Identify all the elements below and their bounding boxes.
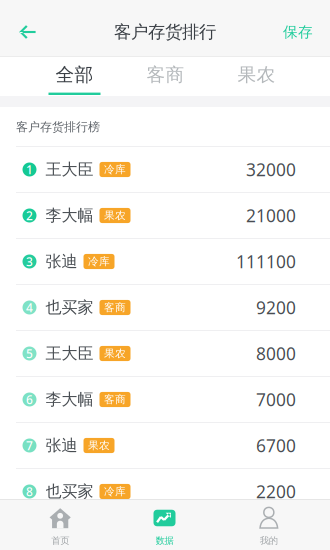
- staticText: 冷库: [104, 485, 126, 498]
- staticText: 我的: [260, 535, 278, 546]
- staticText: 2: [26, 207, 33, 223]
- staticText: 4: [26, 299, 33, 315]
- staticText: 客商: [104, 301, 126, 314]
- staticText: 客户存货排行: [114, 21, 216, 43]
- staticText: 首页: [51, 535, 69, 546]
- button[interactable]: 3: [0, 239, 330, 285]
- staticText: 果农: [88, 439, 110, 452]
- staticText: 8: [26, 483, 33, 499]
- button[interactable]: 1: [0, 147, 330, 193]
- button[interactable]: 保存: [268, 8, 330, 56]
- staticText: 3: [26, 253, 33, 269]
- staticText: 数据: [155, 535, 173, 546]
- staticText: 全部: [55, 63, 93, 86]
- staticText: 果农: [237, 63, 275, 86]
- staticText: 也买家: [45, 298, 93, 317]
- staticText: 9200: [256, 296, 296, 319]
- staticText: 张迪: [45, 252, 77, 271]
- button[interactable]: 6: [0, 377, 330, 423]
- staticText: 客商: [104, 393, 126, 406]
- staticText: 8000: [256, 342, 296, 365]
- button[interactable]: 首页: [8, 500, 112, 550]
- button[interactable]: 全部: [29, 57, 120, 96]
- button[interactable]: 数据: [112, 500, 217, 550]
- staticText: 王大臣: [45, 344, 93, 363]
- staticText: 李大幅: [45, 390, 93, 409]
- button[interactable]: 4: [0, 285, 330, 331]
- staticText: 冷库: [104, 163, 126, 176]
- staticText: 客户存货排行榜: [16, 120, 100, 134]
- button[interactable]: Back: [0, 8, 62, 56]
- staticText: 7000: [256, 388, 296, 411]
- staticText: 5: [26, 345, 33, 361]
- staticText: 21000: [246, 204, 296, 227]
- staticText: 32000: [246, 158, 296, 181]
- staticText: 客商: [146, 63, 184, 86]
- button[interactable]: 2: [0, 193, 330, 239]
- button[interactable]: 5: [0, 331, 330, 377]
- staticText: 也买家: [45, 482, 93, 501]
- button[interactable]: 7: [0, 423, 330, 469]
- staticText: 1: [26, 161, 33, 177]
- button[interactable]: 我的: [217, 500, 321, 550]
- button[interactable]: 果农: [211, 57, 302, 96]
- staticText: 7: [26, 437, 33, 453]
- staticText: 李大幅: [45, 206, 93, 225]
- staticText: 果农: [104, 209, 126, 222]
- staticText: 2200: [256, 480, 296, 503]
- staticText: 王大臣: [45, 160, 93, 179]
- staticText: 111100: [236, 250, 296, 273]
- staticText: 张迪: [45, 436, 77, 455]
- staticText: 保存: [283, 23, 313, 41]
- staticText: 冷库: [88, 255, 110, 268]
- staticText: 6700: [256, 434, 296, 457]
- button[interactable]: 8: [0, 469, 330, 515]
- staticText: 6: [26, 391, 33, 407]
- button[interactable]: 客商: [120, 57, 211, 96]
- staticText: 果农: [104, 347, 126, 360]
